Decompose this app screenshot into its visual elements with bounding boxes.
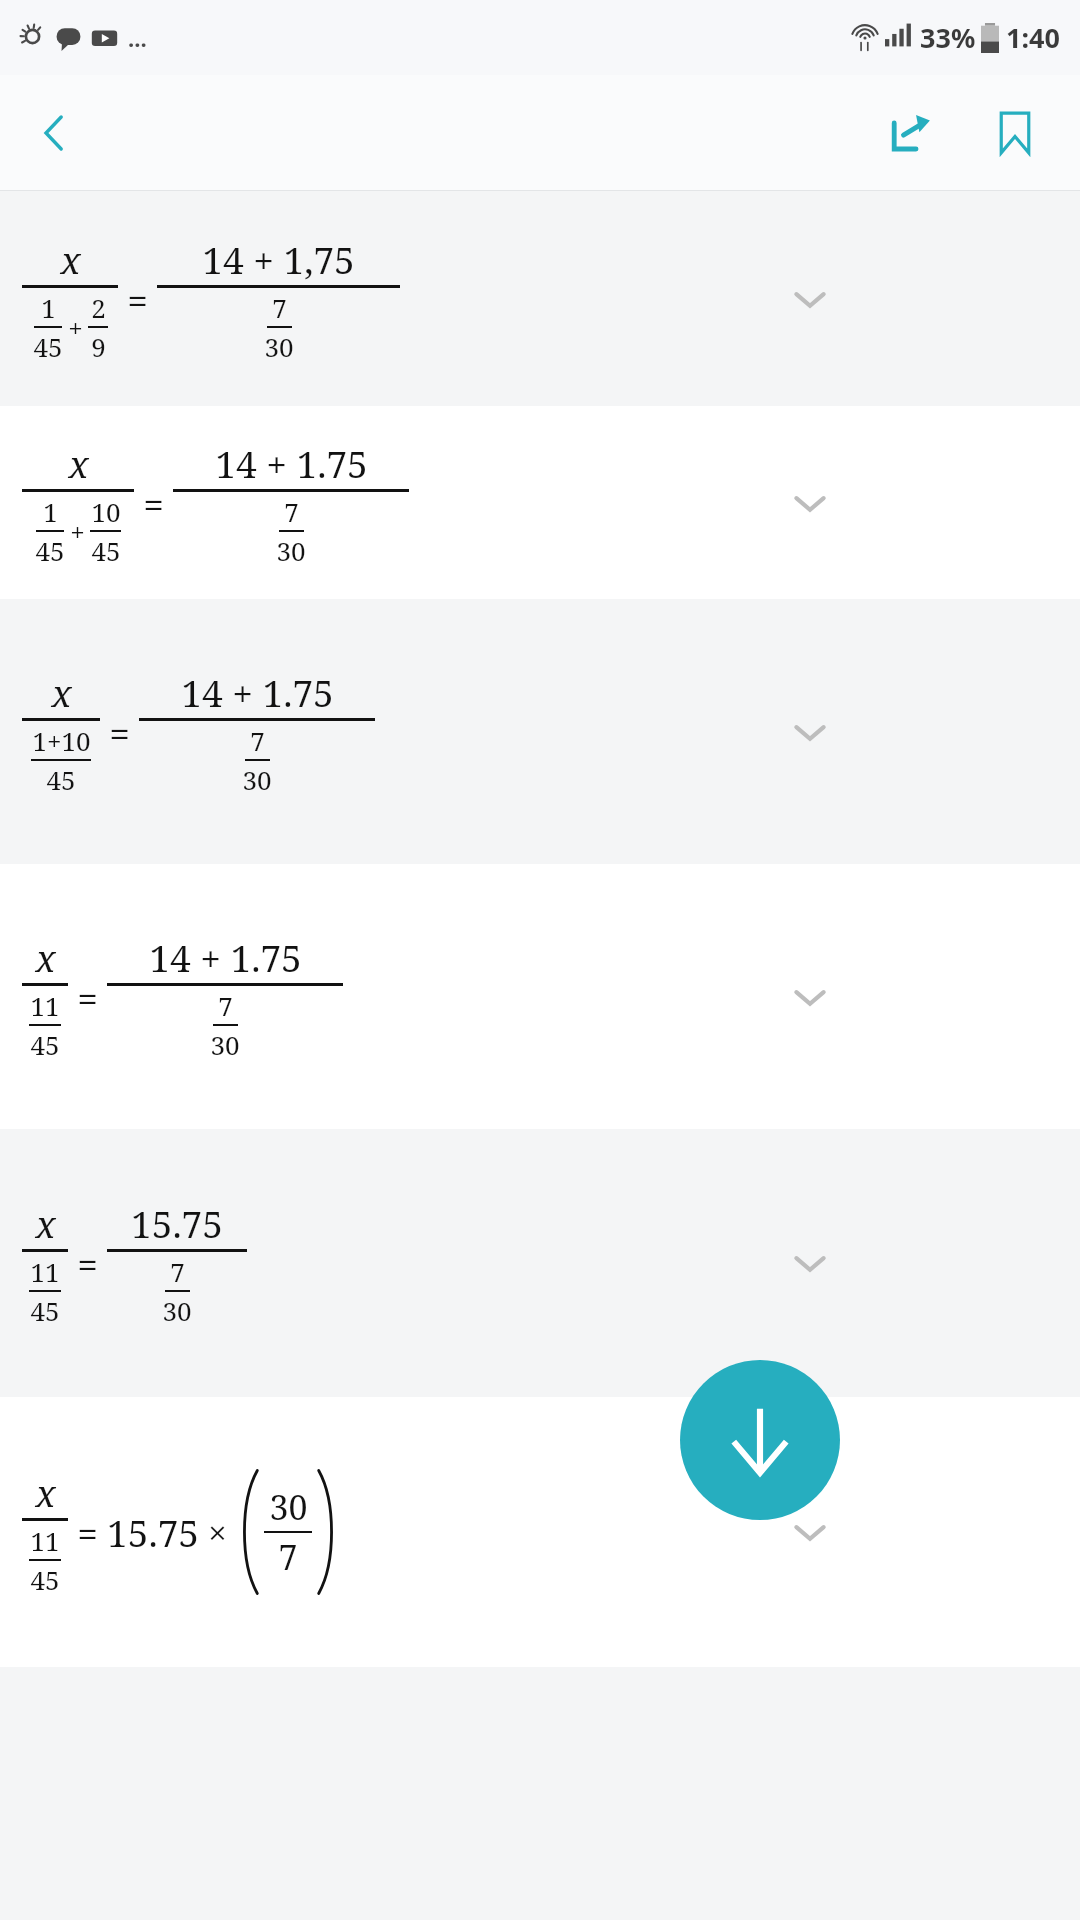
button[interactable]: Expand step xyxy=(782,271,838,327)
staticText: 30 xyxy=(242,762,272,797)
staticText: 7 xyxy=(284,494,299,529)
button[interactable]: x xyxy=(0,864,1080,1129)
staticText: 30 xyxy=(162,1293,192,1328)
staticText: = xyxy=(77,972,98,1022)
button[interactable]: Scroll down xyxy=(680,1360,840,1520)
staticText: x xyxy=(51,667,72,717)
staticText: 30 xyxy=(276,533,306,568)
staticText: 10 xyxy=(91,494,121,529)
button[interactable]: Expand step xyxy=(782,969,838,1025)
button[interactable]: Expand step xyxy=(782,704,838,760)
staticText: x xyxy=(35,932,56,982)
staticText: 1:40 xyxy=(1006,19,1060,56)
staticText: 7 xyxy=(218,988,233,1023)
staticText: … xyxy=(128,23,147,53)
staticText: 2 xyxy=(91,290,106,325)
button[interactable]: x xyxy=(0,1129,1080,1397)
staticText: 1+10 xyxy=(32,723,91,758)
staticText: + xyxy=(68,310,83,345)
button[interactable]: x xyxy=(0,191,1080,406)
staticText: 15.75 xyxy=(131,1198,223,1248)
staticText: 45 xyxy=(46,762,76,797)
staticText: 7 xyxy=(272,290,287,325)
button[interactable]: Share xyxy=(872,94,950,172)
staticText: 14 + 1.75 xyxy=(181,667,334,717)
staticText: 7 xyxy=(278,1534,298,1580)
staticText: x xyxy=(35,1467,56,1517)
staticText: 15.75 xyxy=(107,1507,199,1557)
staticText: 45 xyxy=(35,533,65,568)
staticText: 1 xyxy=(43,494,58,529)
button[interactable]: Expand step xyxy=(782,475,838,531)
button[interactable]: x xyxy=(0,406,1080,599)
staticText: = xyxy=(109,707,130,757)
staticText: 1 xyxy=(41,290,56,325)
staticText: x xyxy=(35,1198,56,1248)
staticText: 30 xyxy=(264,329,294,364)
staticText: 45 xyxy=(33,329,63,364)
button[interactable]: Expand step xyxy=(782,1504,838,1560)
staticText: 11 xyxy=(30,1254,60,1289)
button[interactable]: x xyxy=(0,599,1080,864)
button[interactable]: Bookmark xyxy=(976,94,1054,172)
staticText: + xyxy=(70,514,85,549)
staticText: 30 xyxy=(269,1484,308,1530)
button[interactable]: x xyxy=(0,1397,1080,1667)
staticText: x xyxy=(60,234,81,284)
staticText: = xyxy=(127,274,148,324)
staticText: 33% xyxy=(920,19,976,56)
button[interactable]: Back xyxy=(18,97,90,169)
staticText: 11 xyxy=(30,988,60,1023)
staticText: 7 xyxy=(250,723,265,758)
staticText: × xyxy=(208,1510,227,1555)
staticText: 45 xyxy=(91,533,121,568)
staticText: 45 xyxy=(30,1293,60,1328)
staticText: 45 xyxy=(30,1562,60,1597)
staticText: 14 + 1.75 xyxy=(215,438,368,488)
staticText: 14 + 1,75 xyxy=(202,234,355,284)
staticText: 9 xyxy=(91,329,106,364)
staticText: 7 xyxy=(170,1254,185,1289)
staticText: 30 xyxy=(210,1027,240,1062)
staticText: = xyxy=(143,478,164,528)
staticText: x xyxy=(68,438,89,488)
staticText: 11 xyxy=(30,1523,60,1558)
button[interactable]: Expand step xyxy=(782,1235,838,1291)
staticText: = xyxy=(77,1507,98,1557)
staticText: 45 xyxy=(30,1027,60,1062)
staticText: = xyxy=(77,1238,98,1288)
staticText: 14 + 1.75 xyxy=(149,932,302,982)
